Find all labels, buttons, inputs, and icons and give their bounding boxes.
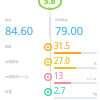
staticText: 2.7 (54, 85, 66, 96)
staticText: 84.60 (5, 23, 34, 38)
staticText: 5.6 (44, 0, 56, 6)
button[interactable]: BMI (0, 39, 100, 54)
staticText: kg (48, 6, 52, 10)
staticText: 13 (54, 70, 64, 81)
staticText: BMI (5, 44, 12, 49)
staticText: レベル (87, 77, 97, 81)
staticText: 目標体重 (55, 18, 68, 22)
staticText: 体重 (5, 18, 12, 22)
staticText: % (94, 62, 97, 66)
staticText: 31.5 (54, 40, 70, 51)
staticText: kg (93, 92, 97, 96)
button[interactable]: 内臓脂肪レベル (0, 69, 100, 84)
staticText: 内臓脂肪レベル (5, 75, 29, 79)
button[interactable]: 目標体重 (50, 17, 100, 38)
button[interactable]: 体重 (0, 17, 49, 38)
staticText: 79.00 (55, 23, 84, 38)
staticText: 27.0 (54, 55, 70, 66)
button[interactable]: 骨量 (0, 84, 100, 99)
button[interactable]: BMI score gauge 5.6 (38, 0, 62, 10)
staticText: 体脂肪率 (5, 60, 19, 64)
staticText: 骨量 (5, 90, 12, 94)
button[interactable]: 体脂肪率 (0, 54, 100, 69)
